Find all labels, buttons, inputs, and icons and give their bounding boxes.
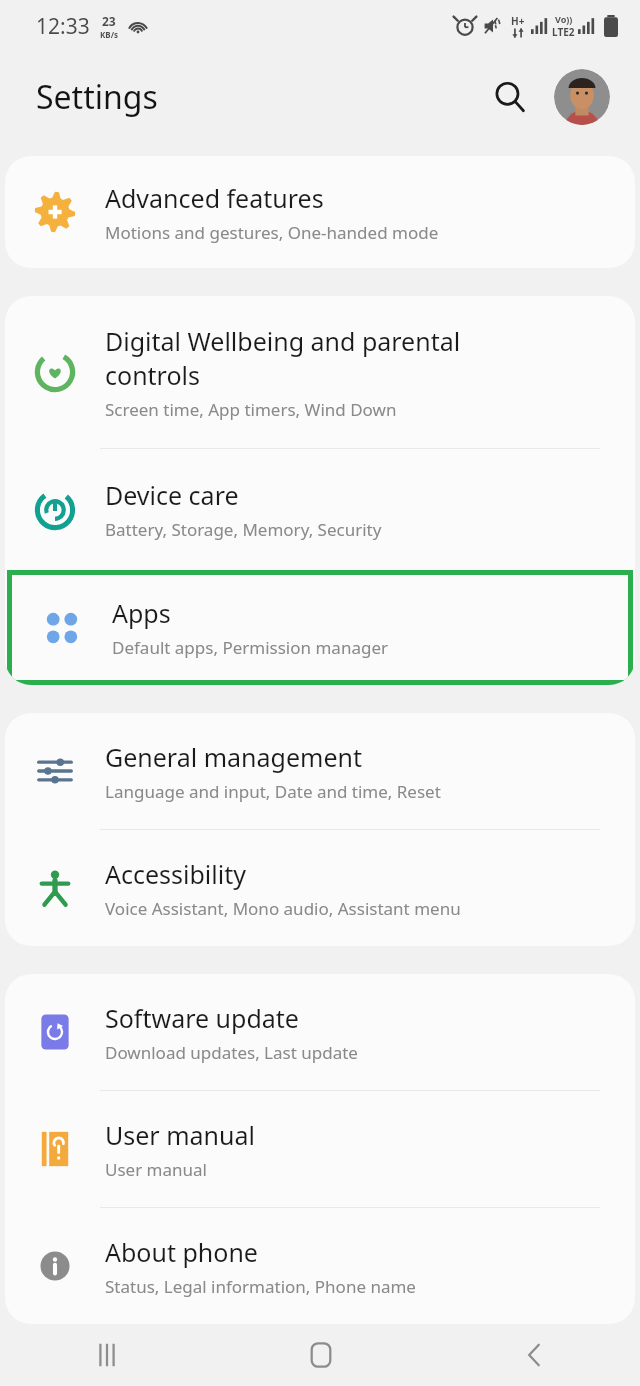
staticText: KB/s xyxy=(100,29,118,40)
staticText: Screen time, App timers, Wind Down xyxy=(105,398,397,421)
staticText: Battery, Storage, Memory, Security xyxy=(105,518,382,541)
button[interactable]: Search xyxy=(482,69,538,125)
staticText: Advanced features xyxy=(105,181,324,215)
staticText: Language and input, Date and time, Reset xyxy=(105,780,441,803)
button[interactable]: Digital Wellbeing and parental controls xyxy=(5,296,635,448)
button[interactable]: Accessibility xyxy=(5,830,635,946)
staticText: General management xyxy=(105,740,362,774)
staticText: 12:33 xyxy=(36,12,90,41)
staticText: Voice Assistant, Mono audio, Assistant m… xyxy=(105,897,461,920)
staticText: Software update xyxy=(105,1001,299,1035)
button[interactable]: Device care xyxy=(5,449,635,570)
staticText: User manual xyxy=(105,1118,255,1152)
button[interactable]: Recent apps xyxy=(0,1324,214,1386)
staticText: Device care xyxy=(105,478,239,512)
button[interactable]: Home xyxy=(214,1324,427,1386)
staticText: 23 xyxy=(102,13,116,29)
staticText: Status, Legal information, Phone name xyxy=(105,1275,416,1298)
staticText: Settings xyxy=(36,75,158,119)
button[interactable]: About phone xyxy=(5,1208,635,1324)
button[interactable]: Back xyxy=(427,1324,640,1386)
staticText: Digital Wellbeing and parental controls xyxy=(105,324,525,392)
staticText: Accessibility xyxy=(105,857,246,891)
staticText: About phone xyxy=(105,1235,258,1269)
button[interactable]: Account profile xyxy=(554,69,610,125)
staticText: User manual xyxy=(105,1158,207,1181)
staticText: Apps xyxy=(112,596,171,630)
button[interactable]: General management xyxy=(5,713,635,829)
button[interactable]: Software update xyxy=(5,974,635,1090)
staticText: LTE2 xyxy=(552,25,575,39)
button[interactable]: Apps xyxy=(12,575,628,680)
staticText: Motions and gestures, One-handed mode xyxy=(105,221,439,244)
staticText: Default apps, Permission manager xyxy=(112,636,388,659)
staticText: Vo)) xyxy=(555,13,573,25)
staticText: H+ xyxy=(511,14,525,28)
staticText: Download updates, Last update xyxy=(105,1041,358,1064)
button[interactable]: User manual xyxy=(5,1091,635,1207)
button[interactable]: Advanced features xyxy=(5,156,635,268)
